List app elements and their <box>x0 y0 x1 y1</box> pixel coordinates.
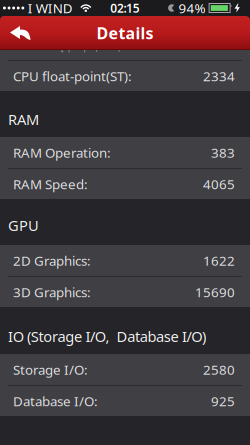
staticText: RAM Speed: <box>13 175 88 193</box>
staticText: 2580 <box>203 361 235 378</box>
staticText: I WIND <box>28 0 73 17</box>
staticText: 2D Graphics: <box>13 252 91 269</box>
staticText: 02:15 <box>110 0 140 16</box>
staticText: 383 <box>211 144 235 161</box>
staticText: CPU float-point(ST): <box>13 67 132 85</box>
button[interactable]: Back <box>0 16 31 50</box>
staticText: RAM Operation: <box>13 144 111 161</box>
staticText: 1622 <box>203 252 235 269</box>
staticText: 2334 <box>203 67 235 85</box>
staticText: 925 <box>211 392 235 410</box>
staticText: Details <box>96 22 153 44</box>
staticText: 94% <box>179 0 206 17</box>
staticText: Database I/O: <box>13 392 98 410</box>
staticText: GPU <box>8 215 39 235</box>
staticText: 15690 <box>195 283 235 301</box>
staticText: IO (Storage I/O, Database I/O) <box>8 326 206 346</box>
staticText: RAM <box>8 109 39 129</box>
staticText: Storage I/O: <box>13 361 88 378</box>
staticText: 3D Graphics: <box>13 283 91 301</box>
staticText: 4065 <box>203 175 235 193</box>
